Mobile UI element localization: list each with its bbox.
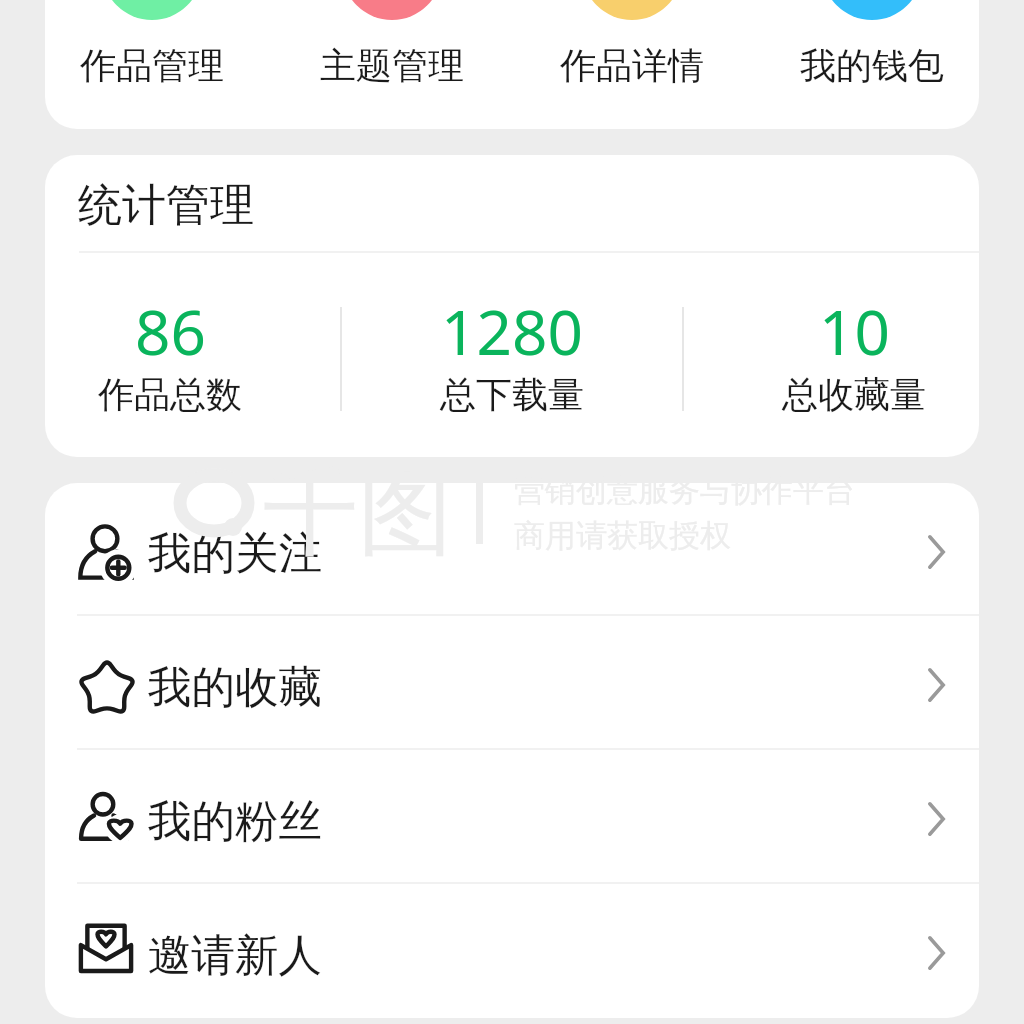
staticText: 我的关注 xyxy=(148,526,322,581)
staticText: 1280 xyxy=(441,289,583,373)
staticText: 作品详情 xyxy=(560,43,704,88)
button[interactable]: 86 xyxy=(45,155,340,457)
other: Open 我的关注 xyxy=(928,535,945,569)
button[interactable]: 邀请新人 xyxy=(45,884,979,1018)
staticText: 主题管理 xyxy=(320,43,464,88)
staticText: 商用请获取授权 xyxy=(514,516,731,555)
staticText: 作品管理 xyxy=(80,43,224,88)
staticText: 我的粉丝 xyxy=(148,794,322,849)
other: Open 我的粉丝 xyxy=(928,802,945,836)
button[interactable]: 主题管理 xyxy=(320,0,464,88)
staticText: 总收藏量 xyxy=(782,372,926,417)
staticText: 千图 xyxy=(263,454,453,574)
staticText: 我的钱包 xyxy=(800,43,944,88)
staticText: 86 xyxy=(135,289,206,373)
button[interactable]: 作品管理 xyxy=(80,0,224,88)
staticText: 我的收藏 xyxy=(148,660,322,715)
button[interactable]: 我的收藏 xyxy=(45,616,979,750)
staticText: 作品总数 xyxy=(98,372,242,417)
staticText: 总下载量 xyxy=(440,372,584,417)
other: Open 邀请新人 xyxy=(928,936,945,970)
button[interactable]: 我的粉丝 xyxy=(45,750,979,884)
button[interactable]: 我的关注 xyxy=(45,483,979,616)
staticText: 邀请新人 xyxy=(148,928,322,983)
button[interactable]: 1280 xyxy=(342,155,682,457)
button[interactable]: 作品详情 xyxy=(560,0,704,88)
staticText: 统计管理 xyxy=(78,178,254,233)
button[interactable]: 10 xyxy=(684,155,979,457)
other: Open 我的收藏 xyxy=(928,668,945,702)
staticText: 10 xyxy=(819,289,890,373)
button[interactable]: 我的钱包 xyxy=(800,0,944,88)
staticText: 营销创意服务与协作平台 xyxy=(514,471,855,510)
